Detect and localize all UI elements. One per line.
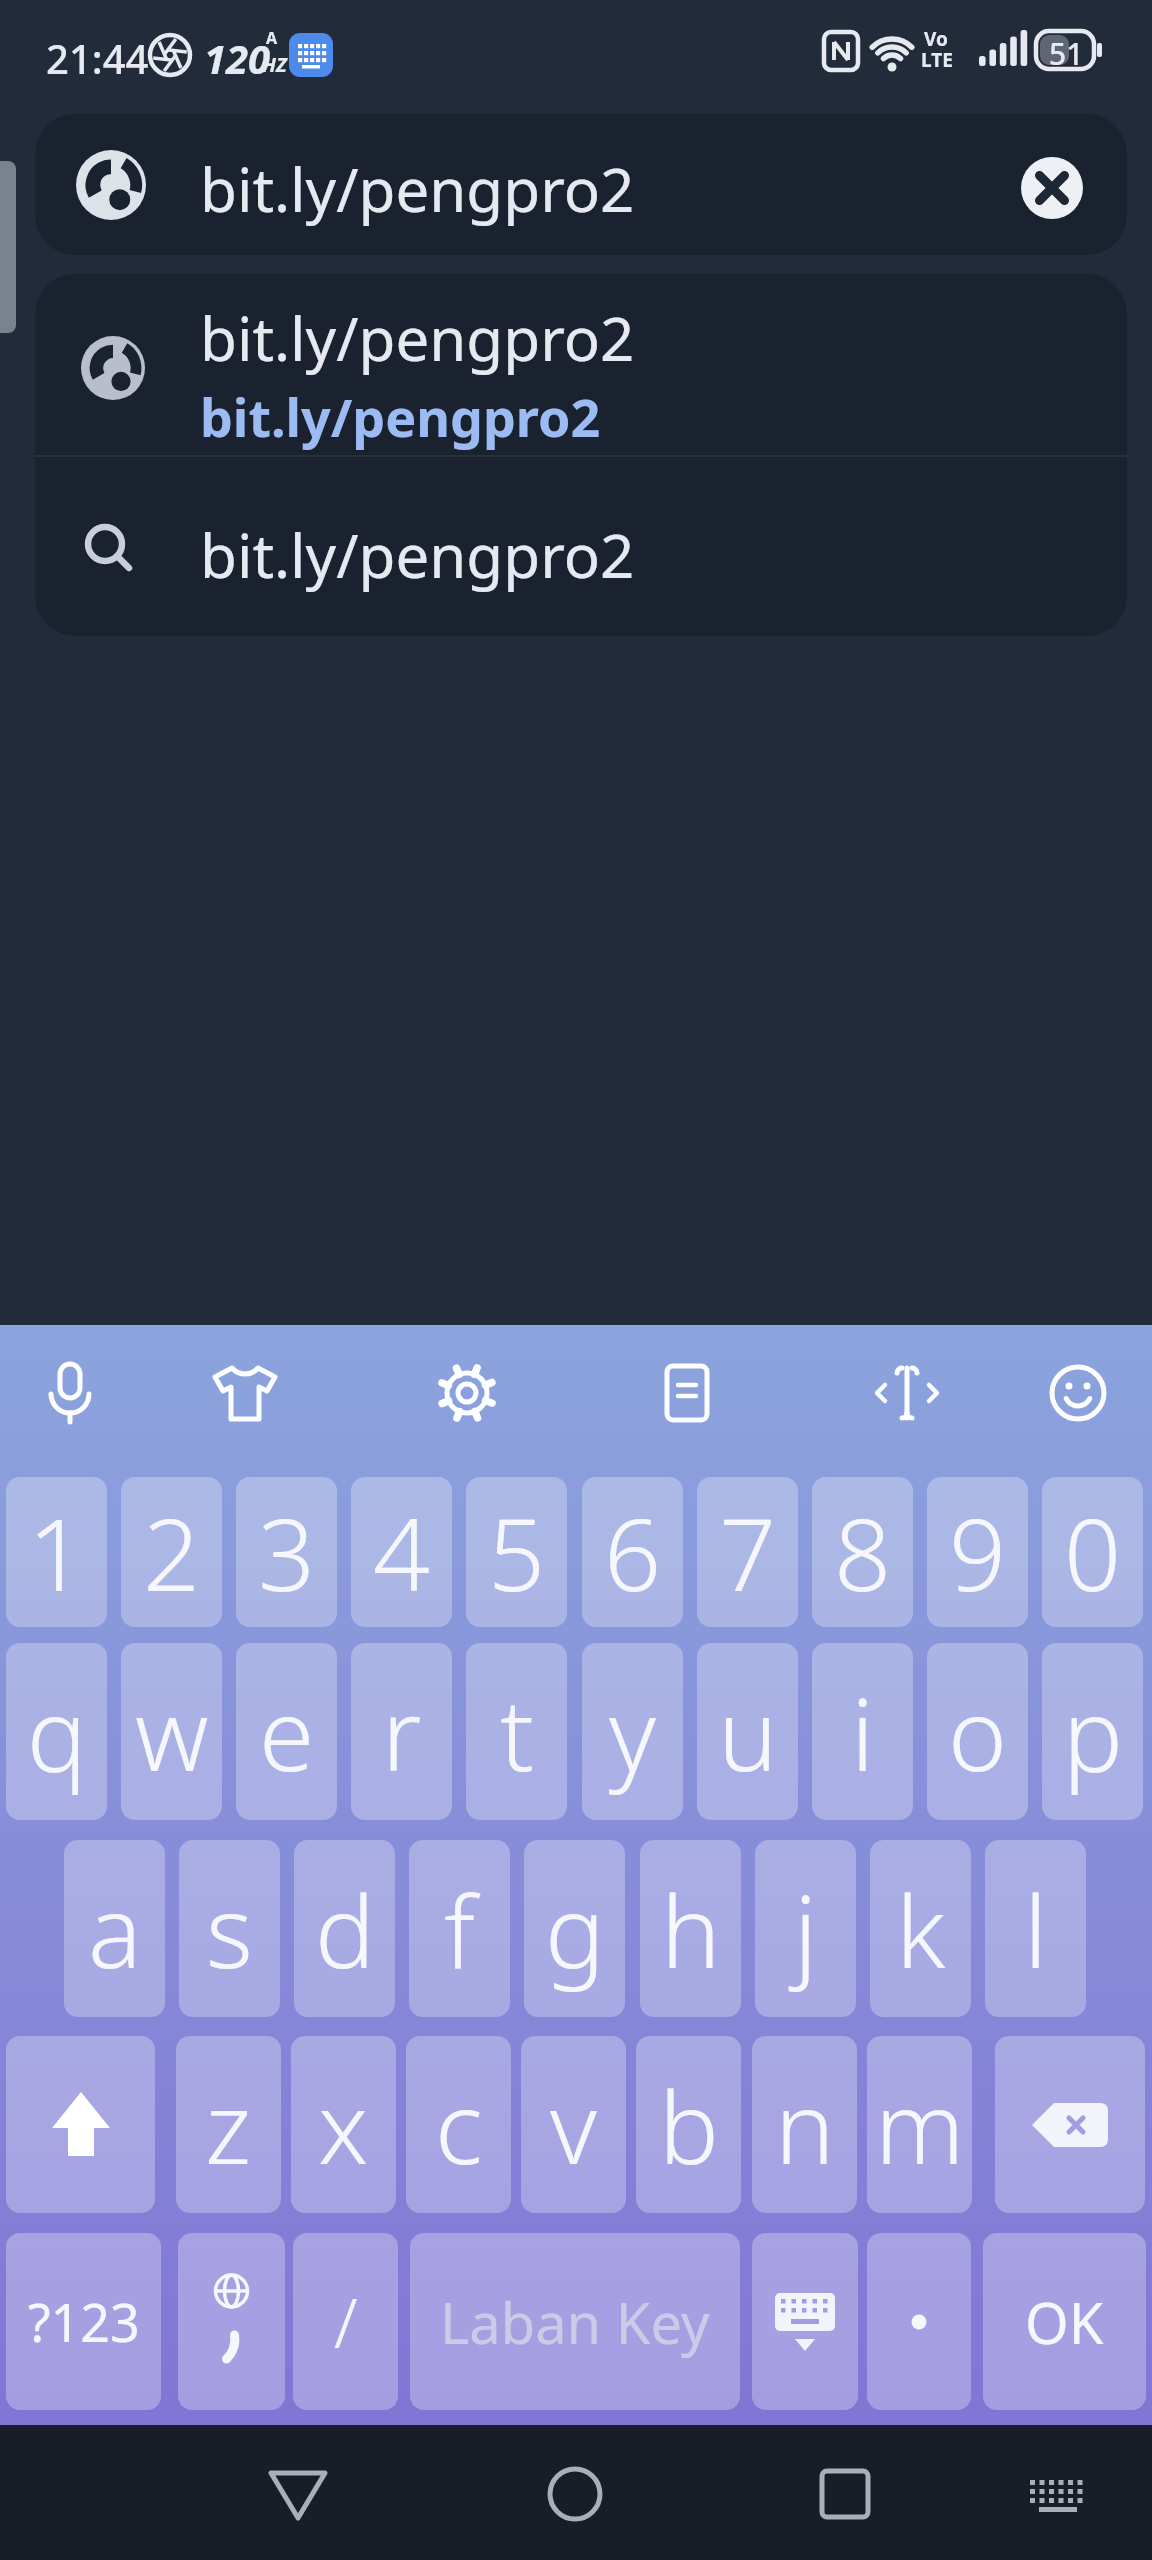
button[interactable]: bit.ly/pengpro2 <box>35 274 1127 455</box>
staticText: 3 <box>258 1484 316 1620</box>
staticText: x <box>318 2057 369 2193</box>
button[interactable]: 6 <box>582 1477 683 1627</box>
staticText: 4 <box>373 1484 431 1620</box>
staticText: Vo <box>924 26 948 52</box>
staticText: 120 <box>204 31 271 85</box>
staticText: 0 <box>1064 1484 1122 1620</box>
button[interactable]: p <box>1042 1643 1143 1820</box>
staticText: p <box>1063 1664 1123 1800</box>
button[interactable]: OK <box>983 2233 1146 2410</box>
button[interactable]: 5 <box>466 1477 567 1627</box>
button[interactable]: e <box>236 1643 337 1820</box>
button[interactable]: Laban Key <box>410 2233 740 2410</box>
staticText: r <box>382 1664 422 1800</box>
button[interactable]: s <box>179 1840 280 2017</box>
button[interactable]: b <box>636 2036 741 2213</box>
button[interactable]: z <box>176 2036 281 2213</box>
button[interactable] <box>266 2462 330 2526</box>
button[interactable]: 2 <box>121 1477 222 1627</box>
button[interactable] <box>25 1349 115 1439</box>
staticText: s <box>206 1861 253 1997</box>
button[interactable]: v <box>521 2036 626 2213</box>
button[interactable] <box>642 1348 732 1438</box>
button[interactable] <box>862 1348 952 1438</box>
button[interactable]: u <box>697 1643 798 1820</box>
button[interactable]: r <box>351 1643 452 1820</box>
button[interactable]: 3 <box>236 1477 337 1627</box>
button[interactable] <box>867 2233 971 2410</box>
staticText: bit.ly/pengpro2 <box>200 148 635 230</box>
staticText: 7 <box>719 1484 777 1620</box>
button[interactable]: ?123 <box>6 2233 161 2410</box>
staticText: 2 <box>143 1484 201 1620</box>
button[interactable]: q <box>6 1643 107 1820</box>
button[interactable] <box>752 2233 858 2410</box>
button[interactable]: o <box>927 1643 1028 1820</box>
button[interactable]: a <box>64 1840 165 2017</box>
button[interactable]: 1 <box>6 1477 107 1627</box>
button[interactable]: y <box>582 1643 683 1820</box>
button[interactable]: g <box>524 1840 625 2017</box>
staticText: bit.ly/pengpro2 <box>200 381 601 452</box>
staticText: bit.ly/pengpro2 <box>200 514 635 596</box>
button[interactable] <box>200 1348 290 1438</box>
staticText: m <box>875 2057 965 2193</box>
staticText: l <box>1024 1861 1048 1997</box>
staticText: t <box>500 1664 534 1800</box>
button[interactable] <box>813 2462 877 2526</box>
button[interactable]: w <box>121 1643 222 1820</box>
staticText: Laban Key <box>440 2284 710 2360</box>
button[interactable]: f <box>409 1840 510 2017</box>
staticText: bit.ly/pengpro2 <box>200 297 635 379</box>
staticText: 1 <box>28 1484 86 1620</box>
staticText: a <box>88 1861 142 1997</box>
button[interactable] <box>995 2036 1145 2213</box>
staticText: HZ <box>262 51 287 78</box>
staticText: d <box>315 1861 375 1997</box>
staticText: i <box>851 1664 875 1800</box>
button[interactable]: n <box>752 2036 857 2213</box>
button[interactable] <box>178 2233 285 2410</box>
staticText: z <box>205 2057 252 2193</box>
button[interactable] <box>1026 2462 1090 2526</box>
button[interactable]: i <box>812 1643 913 1820</box>
staticText: ?123 <box>28 2286 140 2357</box>
button[interactable]: j <box>755 1840 856 2017</box>
button[interactable] <box>543 2462 607 2526</box>
button[interactable]: 4 <box>351 1477 452 1627</box>
button[interactable]: bit.ly/pengpro2 <box>35 457 1127 636</box>
staticText: e <box>259 1664 315 1800</box>
button[interactable]: / <box>293 2233 398 2410</box>
button[interactable]: x <box>291 2036 396 2213</box>
button[interactable] <box>1021 157 1083 219</box>
button[interactable]: l <box>985 1840 1086 2017</box>
staticText: c <box>435 2057 483 2193</box>
button[interactable]: bit.ly/pengpro2 <box>35 114 1127 255</box>
button[interactable]: k <box>870 1840 971 2017</box>
button[interactable]: t <box>466 1643 567 1820</box>
staticText: n <box>775 2057 835 2193</box>
button[interactable] <box>422 1348 512 1438</box>
staticText: o <box>948 1664 1007 1800</box>
button[interactable]: 9 <box>927 1477 1028 1627</box>
staticText: 8 <box>834 1484 892 1620</box>
button[interactable]: c <box>406 2036 511 2213</box>
button[interactable]: 8 <box>812 1477 913 1627</box>
button[interactable]: h <box>640 1840 741 2017</box>
button[interactable] <box>1033 1348 1123 1438</box>
button[interactable] <box>6 2036 155 2213</box>
staticText: f <box>444 1861 475 1997</box>
staticText: h <box>661 1861 721 1997</box>
staticText: 21:44 <box>46 31 149 85</box>
staticText: u <box>718 1664 778 1800</box>
staticText: LTE <box>921 47 953 73</box>
button[interactable]: d <box>294 1840 395 2017</box>
staticText: 9 <box>949 1484 1007 1620</box>
staticText: / <box>334 2275 358 2368</box>
staticText: k <box>896 1861 946 1997</box>
button[interactable]: m <box>867 2036 972 2213</box>
button[interactable]: 0 <box>1042 1477 1143 1627</box>
staticText: A <box>266 27 278 49</box>
staticText: OK <box>1025 2284 1104 2360</box>
button[interactable]: 7 <box>697 1477 798 1627</box>
